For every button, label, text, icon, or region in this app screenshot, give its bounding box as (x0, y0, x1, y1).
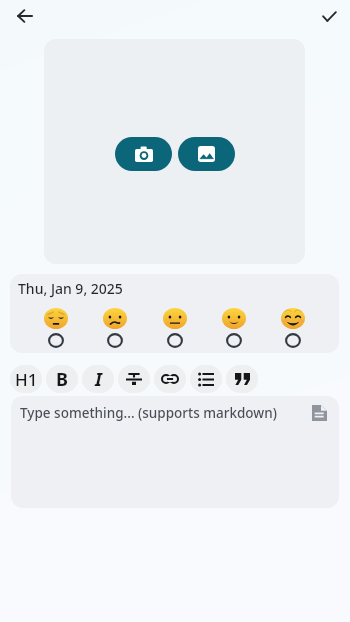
button[interactable]: Strikethrough (118, 365, 150, 393)
button[interactable]: Mood level 4 (222, 308, 246, 348)
staticText: I (95, 367, 102, 392)
button[interactable]: Heading 1 (10, 365, 42, 393)
button[interactable]: Take photo (115, 137, 172, 171)
button[interactable]: Bullet list (190, 365, 222, 393)
button[interactable]: Pick image from gallery (178, 137, 235, 171)
staticText: B (56, 367, 68, 392)
button[interactable]: Quote (226, 365, 258, 393)
button[interactable]: Save entry (310, 0, 348, 35)
button[interactable]: Mood level 3 (163, 308, 187, 348)
button[interactable]: Markdown document (309, 403, 329, 423)
button[interactable]: Italic (82, 365, 114, 393)
button[interactable]: Mood level 1 (44, 308, 68, 348)
button[interactable]: Insert link (154, 365, 186, 393)
staticText: Type something... (supports markdown) (20, 404, 277, 422)
button[interactable]: Mood level 2 (103, 308, 127, 348)
staticText: H1 (15, 368, 38, 391)
button[interactable]: Back (6, 0, 44, 35)
button[interactable]: Bold (46, 365, 78, 393)
button[interactable]: Mood level 5 (281, 308, 305, 348)
staticText: Thu, Jan 9, 2025 (18, 279, 123, 298)
